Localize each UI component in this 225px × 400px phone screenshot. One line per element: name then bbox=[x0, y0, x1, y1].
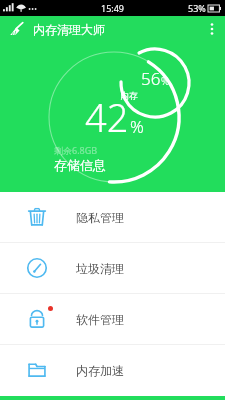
staticText: 隐私管理 bbox=[76, 210, 124, 225]
staticText: 垃圾清理 bbox=[76, 261, 124, 276]
staticText: 56 bbox=[141, 67, 161, 90]
staticText: 存储信息 bbox=[54, 157, 174, 173]
staticText: 软件管理 bbox=[76, 312, 124, 327]
other: App icon bbox=[9, 21, 25, 37]
staticText: 42 bbox=[85, 91, 129, 143]
button[interactable]: More options bbox=[199, 16, 225, 41]
button[interactable]: 软件管理 bbox=[0, 294, 225, 344]
staticText: % bbox=[130, 115, 144, 138]
staticText: 15:49 bbox=[101, 2, 125, 14]
button[interactable]: 内存加速 bbox=[0, 345, 225, 395]
staticText: % bbox=[161, 74, 170, 88]
staticText: 内存清理大师 bbox=[33, 22, 105, 37]
staticText: 内存加速 bbox=[76, 363, 124, 378]
button[interactable]: 隐私管理 bbox=[0, 192, 225, 242]
staticText: 53% bbox=[188, 2, 206, 14]
staticText: 剩余6.8GB bbox=[54, 144, 174, 156]
staticText: 内存 bbox=[120, 90, 190, 101]
button[interactable]: 垃圾清理 bbox=[0, 243, 225, 293]
